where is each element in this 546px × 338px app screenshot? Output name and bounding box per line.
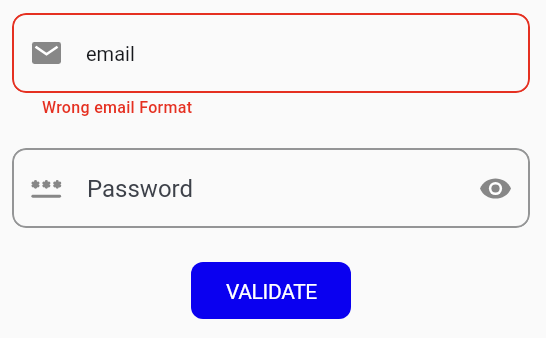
button[interactable]: Show password [477,170,513,206]
button[interactable]: VALIDATE [191,262,351,319]
button[interactable]: email [12,13,530,93]
staticText: Wrong email Format [42,98,193,117]
staticText: Password [87,175,194,203]
staticText: VALIDATE [226,280,317,305]
button[interactable]: Password [12,148,530,228]
staticText: email [86,42,135,65]
